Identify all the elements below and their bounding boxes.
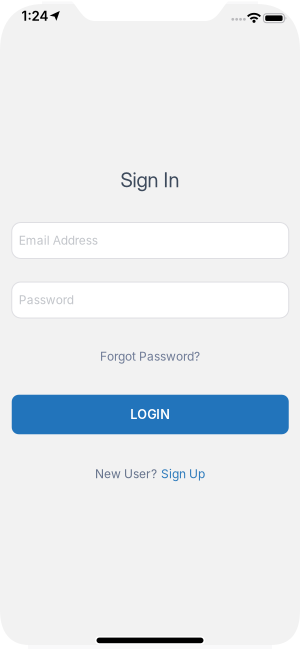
staticText: New User?	[95, 467, 157, 481]
staticText: Email Address	[19, 233, 98, 248]
staticText: Password	[19, 293, 74, 307]
staticText: 1:24	[21, 8, 48, 24]
button[interactable]: Forgot Password?	[100, 349, 200, 364]
button[interactable]: Email Address	[12, 222, 289, 258]
button[interactable]: LOGIN	[12, 395, 289, 434]
button[interactable]: Password	[12, 282, 289, 318]
staticText: Forgot Password?	[100, 349, 200, 364]
staticText: LOGIN	[130, 407, 170, 422]
staticText: Sign Up	[161, 467, 205, 481]
button[interactable]: Sign Up	[161, 467, 205, 481]
staticText: Sign In	[120, 168, 179, 192]
